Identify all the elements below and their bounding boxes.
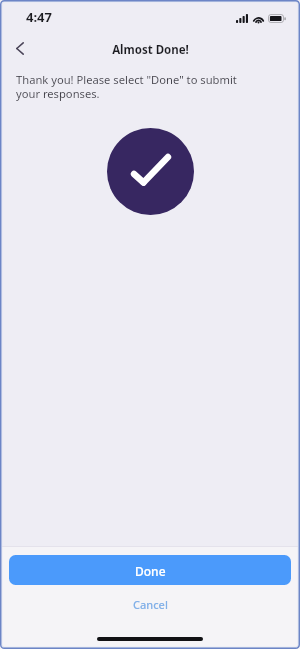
button[interactable]: Cancel [0,585,300,617]
button[interactable]: Done [9,555,291,585]
staticText: Almost Done! [112,42,189,58]
other: Completed [125,146,177,198]
staticText: Thank you! Please select "Done" to submi… [16,72,250,102]
staticText: Done [135,563,166,579]
button[interactable]: Back [0,32,33,65]
staticText: Cancel [133,597,168,612]
staticText: 4:47 [26,8,52,26]
